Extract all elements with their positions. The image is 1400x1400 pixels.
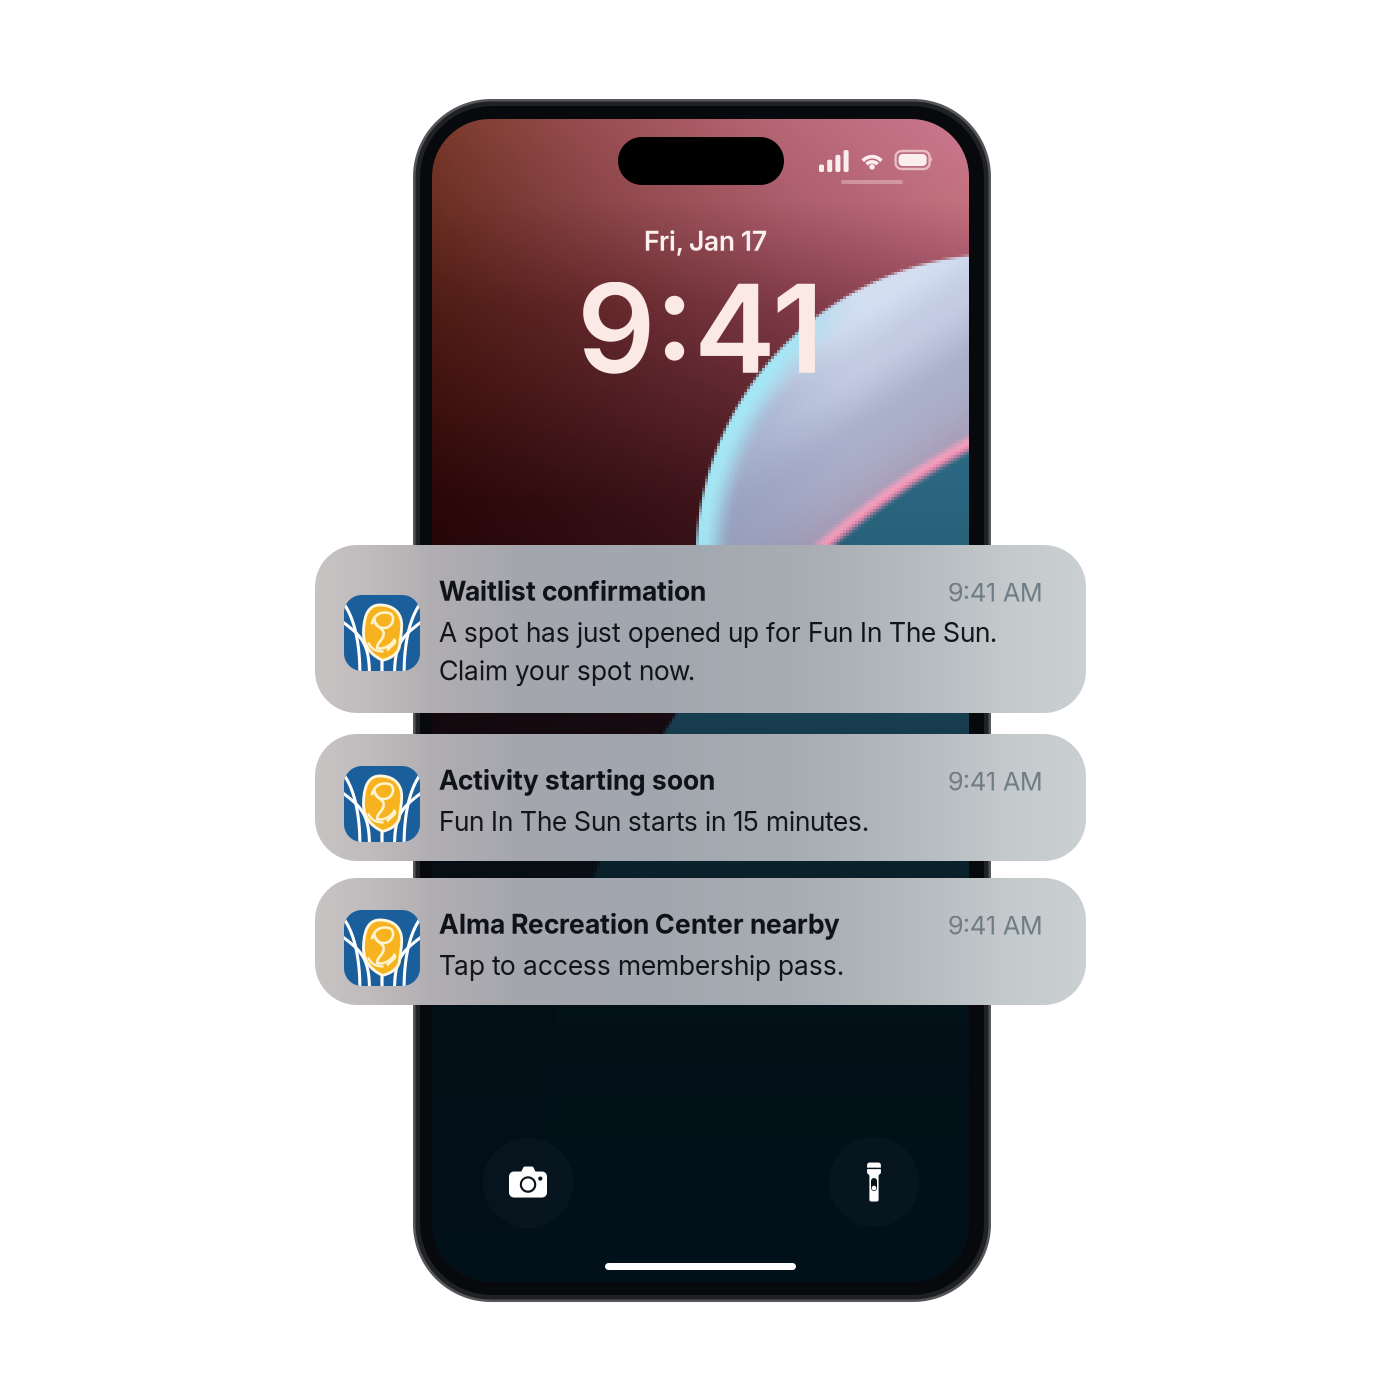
staticText: Fri, Jan 17 bbox=[644, 225, 767, 257]
button[interactable]: Flashlight bbox=[829, 1137, 919, 1227]
staticText: Waitlist confirmation bbox=[439, 575, 706, 607]
staticText: A spot has just opened up for Fun In The… bbox=[439, 616, 997, 649]
staticText: 9:41 bbox=[577, 254, 824, 402]
staticText: 9:41 AM bbox=[948, 577, 1043, 608]
staticText: Alma Recreation Center nearby bbox=[439, 908, 840, 940]
button[interactable]: Waitlist confirmation bbox=[315, 545, 1086, 713]
button[interactable]: Alma Recreation Center nearby bbox=[315, 878, 1086, 1005]
staticText: Activity starting soon bbox=[439, 764, 715, 796]
staticText: Tap to access membership pass. bbox=[439, 949, 844, 982]
staticText: Claim your spot now. bbox=[439, 654, 695, 687]
staticText: 9:41 AM bbox=[948, 910, 1043, 941]
button[interactable]: Activity starting soon bbox=[315, 734, 1086, 861]
staticText: Fun In The Sun starts in 15 minutes. bbox=[439, 805, 869, 838]
button[interactable]: Camera bbox=[483, 1138, 573, 1228]
staticText: 9:41 AM bbox=[948, 766, 1043, 797]
